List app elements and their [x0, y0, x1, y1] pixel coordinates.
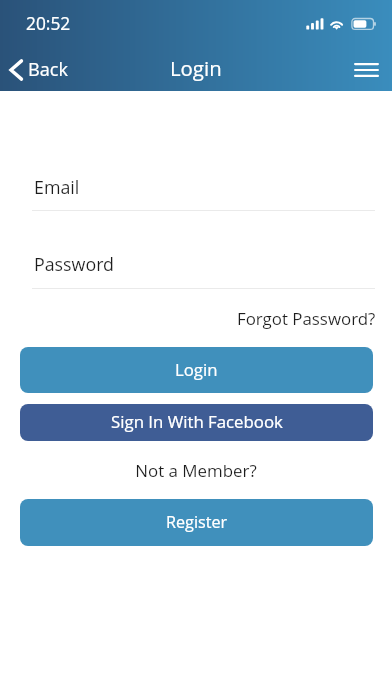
staticText: Password [34, 252, 114, 276]
button[interactable]: Forgot Password? [237, 307, 392, 330]
button[interactable]: Register [20, 499, 373, 546]
staticText: Back [28, 57, 68, 82]
button[interactable]: Back [0, 53, 78, 86]
staticText: Email [34, 175, 80, 199]
button[interactable]: Sign In With Facebook [20, 404, 373, 441]
staticText: Login [170, 54, 222, 82]
button[interactable]: Login [20, 347, 373, 393]
button[interactable]: Menu [348, 54, 384, 86]
staticText: 20:52 [26, 11, 71, 35]
staticText: Sign In With Facebook [111, 410, 283, 433]
staticText: Register [166, 511, 228, 533]
staticText: Login [175, 358, 218, 381]
staticText: Not a Member? [0, 459, 392, 482]
